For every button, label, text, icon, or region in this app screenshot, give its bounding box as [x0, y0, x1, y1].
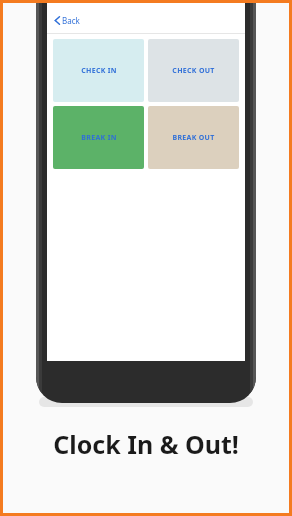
button[interactable]: Back: [51, 14, 83, 27]
button[interactable]: BREAK OUT: [148, 106, 239, 169]
staticText: CHECK OUT: [172, 66, 215, 76]
staticText: BREAK OUT: [172, 133, 215, 143]
staticText: Back: [62, 15, 80, 26]
staticText: Broadway Sound Dance Center: [92, 2, 200, 4]
button[interactable]: CHECK OUT: [148, 39, 239, 102]
button[interactable]: BREAK IN: [53, 106, 144, 169]
staticText: CHECK IN: [81, 66, 117, 76]
staticText: Clock In & Out!: [53, 427, 239, 461]
button[interactable]: CHECK IN: [53, 39, 144, 102]
staticText: BREAK IN: [81, 133, 117, 143]
